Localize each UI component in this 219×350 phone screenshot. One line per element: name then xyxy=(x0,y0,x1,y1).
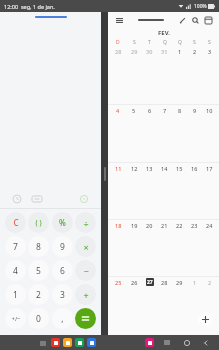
button[interactable]: 22 xyxy=(172,220,187,276)
staticText: ( ) xyxy=(35,218,42,228)
staticText: 2 xyxy=(193,48,197,55)
button[interactable]: 6 xyxy=(142,105,157,162)
button[interactable]: Home xyxy=(181,337,192,348)
staticText: − xyxy=(83,265,89,277)
staticText: 13 xyxy=(146,165,153,172)
button[interactable]: 28 xyxy=(110,46,126,104)
button[interactable]: , xyxy=(52,308,73,329)
button[interactable]: 6 xyxy=(52,260,73,281)
staticText: 4 xyxy=(116,107,120,114)
button[interactable]: 25 xyxy=(110,277,126,333)
button[interactable]: App xyxy=(145,338,154,347)
staticText: 14 xyxy=(161,165,168,172)
button[interactable]: Search xyxy=(190,15,201,26)
button[interactable]: − xyxy=(75,260,96,281)
button[interactable]: 5 xyxy=(126,105,142,162)
button[interactable]: 24 xyxy=(202,220,217,276)
button[interactable]: 19 xyxy=(126,220,142,276)
staticText: 100% xyxy=(194,3,207,10)
button[interactable]: 11 xyxy=(110,163,126,219)
staticText: 19 xyxy=(131,222,138,229)
button[interactable]: 30 xyxy=(142,46,157,104)
button[interactable]: Keypad xyxy=(30,192,44,206)
button[interactable]: 15 xyxy=(172,163,187,219)
staticText: 30 xyxy=(146,48,153,55)
button[interactable]: 0 xyxy=(28,308,49,329)
staticText: S xyxy=(208,39,211,46)
button[interactable]: 9 xyxy=(187,105,202,162)
staticText: 12:00 seg, 1 de jan. xyxy=(4,3,55,10)
button[interactable]: 29 xyxy=(172,277,187,333)
button[interactable]: × xyxy=(75,236,96,257)
button[interactable]: 1 xyxy=(187,277,202,333)
button[interactable]: 17 xyxy=(202,163,217,219)
staticText: 21 xyxy=(161,222,168,229)
staticText: +/− xyxy=(11,315,21,323)
button[interactable]: 8 xyxy=(172,105,187,162)
button[interactable]: 7 xyxy=(5,236,26,257)
button[interactable]: 26 xyxy=(126,277,142,333)
staticText: 12 xyxy=(131,165,138,172)
button[interactable]: 20 xyxy=(142,220,157,276)
button[interactable]: % xyxy=(52,212,73,233)
button[interactable]: Add event xyxy=(198,312,213,327)
button[interactable]: 3 xyxy=(52,284,73,305)
staticText: 1 xyxy=(193,279,197,286)
button[interactable]: App xyxy=(51,338,60,347)
button[interactable]: ÷ xyxy=(75,212,96,233)
button[interactable]: Edit xyxy=(177,15,188,26)
staticText: 26 xyxy=(131,279,138,286)
button[interactable]: ( ) xyxy=(28,212,49,233)
staticText: 3 xyxy=(60,289,65,301)
button[interactable]: Backspace xyxy=(77,192,91,206)
button[interactable]: 18 xyxy=(110,220,126,276)
button[interactable]: 14 xyxy=(157,163,172,219)
button[interactable]: 16 xyxy=(187,163,202,219)
button[interactable]: 2 xyxy=(202,277,217,333)
button[interactable]: 4 xyxy=(110,105,126,162)
button[interactable]: Back xyxy=(200,337,211,348)
button[interactable]: + xyxy=(75,284,96,305)
staticText: 24 xyxy=(206,222,213,229)
staticText: 9 xyxy=(193,107,197,114)
button[interactable]: 28 xyxy=(157,277,172,333)
staticText: 7 xyxy=(163,107,167,114)
button[interactable]: C xyxy=(5,212,26,233)
button[interactable]: Today xyxy=(203,15,214,26)
button[interactable]: History xyxy=(10,192,24,206)
staticText: 0 xyxy=(36,313,41,325)
staticText: 1 xyxy=(178,48,182,55)
staticText: + xyxy=(83,289,89,301)
button[interactable]: 21 xyxy=(157,220,172,276)
button[interactable]: +/− xyxy=(5,308,26,329)
button[interactable]: 31 xyxy=(157,46,172,104)
staticText: 28 xyxy=(161,279,168,286)
staticText: 5 xyxy=(132,107,136,114)
staticText: ÷ xyxy=(83,217,89,229)
button[interactable]: 12 xyxy=(126,163,142,219)
button[interactable]: 7 xyxy=(157,105,172,162)
button[interactable]: 9 xyxy=(52,236,73,257)
button[interactable]: 2 xyxy=(28,284,49,305)
button[interactable]: 1 xyxy=(5,284,26,305)
staticText: 17 xyxy=(206,165,213,172)
button[interactable]: 13 xyxy=(142,163,157,219)
button[interactable]: Apps xyxy=(38,338,48,348)
button[interactable]: 27 xyxy=(142,277,157,333)
button[interactable]: 4 xyxy=(5,260,26,281)
button[interactable]: App xyxy=(63,338,72,347)
button[interactable]: 8 xyxy=(28,236,49,257)
button[interactable]: 29 xyxy=(126,46,142,104)
button[interactable]: Menu xyxy=(113,14,125,26)
button[interactable]: 1 xyxy=(172,46,187,104)
button[interactable]: 23 xyxy=(187,220,202,276)
button[interactable]: 2 xyxy=(187,46,202,104)
button[interactable] xyxy=(75,308,96,329)
button[interactable]: App xyxy=(75,338,84,347)
button[interactable]: Recents xyxy=(162,337,173,348)
staticText: C xyxy=(13,217,19,228)
button[interactable]: 5 xyxy=(28,260,49,281)
button[interactable]: 3 xyxy=(202,46,217,104)
button[interactable]: 10 xyxy=(202,105,217,162)
button[interactable]: App xyxy=(87,338,96,347)
